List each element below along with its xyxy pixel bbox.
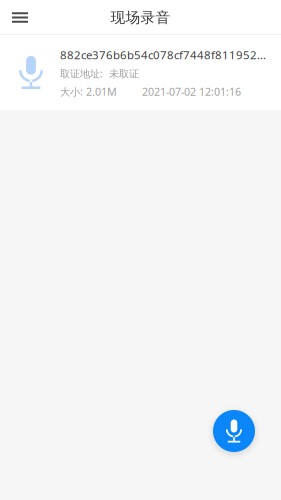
staticText: 取证地址: 未取证 [60, 67, 139, 80]
button[interactable]: Record [213, 410, 255, 452]
button[interactable]: 882ce376b6b54c078cf7448f811952… [0, 35, 281, 110]
button[interactable]: Menu [0, 0, 40, 35]
staticText: 882ce376b6b54c078cf7448f811952… [60, 47, 266, 63]
staticText: 2021-07-02 12:01:16 [142, 84, 241, 99]
staticText: 现场录音 [110, 8, 170, 26]
staticText: 大小: [60, 85, 83, 99]
staticText: 2.01M [83, 84, 117, 99]
